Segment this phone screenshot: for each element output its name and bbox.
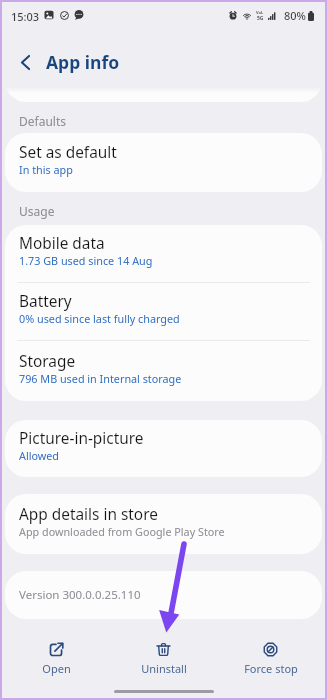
button[interactable]: Battery bbox=[5, 283, 322, 340]
button[interactable]: Set as default bbox=[5, 133, 322, 192]
staticText: Mobile data bbox=[19, 233, 105, 254]
staticText: Defaults bbox=[19, 113, 66, 129]
staticText: Set as default bbox=[19, 142, 117, 163]
staticText: 5G bbox=[257, 15, 264, 22]
staticText: Storage bbox=[19, 351, 76, 372]
staticText: App downloaded from Google Play Store bbox=[19, 524, 225, 539]
staticText: Force stop bbox=[244, 661, 298, 676]
staticText: 0% used since last fully charged bbox=[19, 311, 180, 326]
staticText: VoL bbox=[256, 10, 264, 15]
button[interactable]: Storage bbox=[5, 341, 322, 401]
staticText: Allowed bbox=[19, 448, 60, 463]
button[interactable]: Back bbox=[13, 50, 37, 74]
staticText: Open bbox=[42, 661, 71, 676]
staticText: App info bbox=[46, 50, 120, 74]
staticText: 796 MB used in Internal storage bbox=[19, 371, 182, 386]
staticText: Battery bbox=[19, 291, 72, 312]
staticText: Version 300.0.0.25.110 bbox=[19, 587, 141, 603]
button[interactable]: Force stop bbox=[218, 642, 323, 676]
button[interactable]: Uninstall bbox=[111, 642, 216, 676]
button[interactable]: Open bbox=[4, 642, 109, 676]
button[interactable]: Mobile data bbox=[5, 225, 322, 282]
staticText: 80% bbox=[284, 8, 306, 23]
staticText: 1.73 GB used since 14 Aug bbox=[19, 253, 153, 268]
staticText: In this app bbox=[19, 162, 73, 177]
staticText: Usage bbox=[19, 203, 55, 219]
staticText: App details in store bbox=[19, 504, 158, 525]
staticText: Picture-in-picture bbox=[19, 428, 144, 449]
staticText: Uninstall bbox=[141, 661, 187, 676]
button[interactable]: App details in store bbox=[5, 494, 322, 554]
button[interactable]: Picture-in-picture bbox=[5, 420, 322, 477]
staticText: 15:03 bbox=[11, 9, 40, 24]
